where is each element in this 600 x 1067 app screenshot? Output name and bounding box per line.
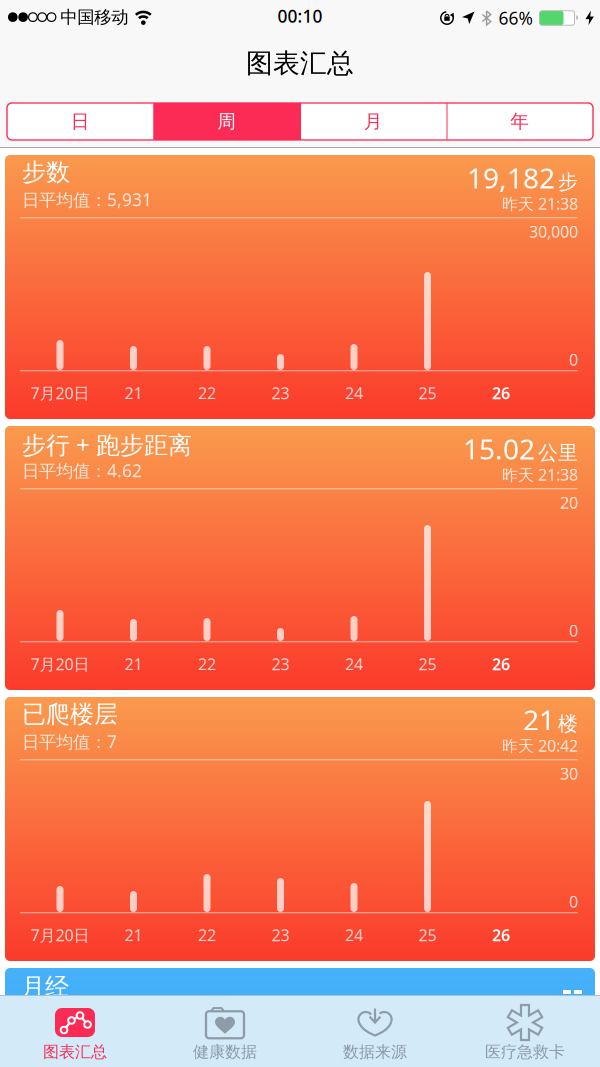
staticText: 26 (492, 653, 510, 675)
staticText: 日平均值：4.62 (22, 459, 142, 482)
staticText: 图表汇总 (246, 47, 354, 80)
staticText: 7月20日 (30, 382, 89, 404)
staticText: 23 (271, 382, 289, 404)
staticText: 日平均值：5,931 (22, 188, 152, 211)
staticText: 0 (569, 620, 578, 641)
staticText: 22 (198, 382, 216, 404)
button[interactable]: 数据来源 (300, 996, 450, 1067)
staticText: 21 (124, 924, 142, 946)
staticText: 24 (345, 924, 363, 946)
button[interactable]: 月经 (5, 968, 595, 1067)
staticText: 21 (523, 701, 555, 738)
button[interactable]: 年 (446, 103, 593, 140)
staticText: 中国移动 (60, 6, 128, 28)
staticText: 0 (569, 349, 578, 370)
staticText: 26 (492, 924, 510, 946)
staticText: 步数 (22, 157, 70, 187)
button[interactable]: 医疗急救卡 (450, 996, 600, 1067)
staticText: 昨天 21:38 (502, 193, 578, 214)
button[interactable]: 图表汇总 (0, 996, 150, 1067)
staticText: 19,182 (467, 159, 555, 196)
button[interactable]: 日 (7, 103, 153, 140)
staticText: 步行 + 跑步距离 (22, 428, 192, 460)
staticText: 已爬楼层 (22, 699, 118, 729)
staticText: 7月20日 (30, 924, 89, 946)
staticText: 7月20日 (30, 653, 89, 675)
staticText: 21 (124, 653, 142, 675)
button[interactable]: 步数 (5, 155, 595, 419)
staticText: 22 (198, 924, 216, 946)
staticText: 26 (492, 382, 510, 404)
staticText: 公里 (538, 441, 578, 465)
staticText: 25 (418, 924, 436, 946)
staticText: 24 (345, 653, 363, 675)
staticText: 月经 (21, 972, 69, 1001)
staticText: 66% (498, 6, 532, 29)
staticText: 21 (124, 382, 142, 404)
staticText: 医疗急救卡 (485, 1042, 565, 1062)
staticText: 图表汇总 (43, 1042, 107, 1062)
staticText: 楼 (558, 712, 578, 736)
staticText: 30 (560, 763, 578, 784)
staticText: 昨天 21:38 (502, 464, 578, 485)
staticText: 日平均值：7 (22, 730, 117, 753)
staticText: 数据来源 (343, 1042, 407, 1062)
button[interactable]: 健康数据 (150, 996, 300, 1067)
staticText: 步 (558, 170, 578, 194)
staticText: 月 (364, 110, 383, 133)
staticText: 15.02 (463, 430, 535, 467)
staticText: 健康数据 (193, 1042, 257, 1062)
button[interactable]: 已爬楼层 (5, 697, 595, 961)
staticText: 22 (198, 653, 216, 675)
staticText: 23 (271, 924, 289, 946)
staticText: 昨天 20:42 (502, 735, 578, 756)
staticText: 30,000 (529, 221, 578, 242)
button[interactable]: 步行 + 跑步距离 (5, 426, 595, 690)
staticText: 20 (560, 492, 578, 513)
staticText: 23 (271, 653, 289, 675)
staticText: 日 (71, 110, 90, 133)
staticText: 年 (510, 110, 529, 133)
button[interactable]: 周 (153, 103, 300, 140)
button[interactable]: 月 (300, 103, 446, 140)
staticText: 24 (345, 382, 363, 404)
staticText: 25 (418, 653, 436, 675)
staticText: 25 (418, 382, 436, 404)
staticText: 00:10 (277, 4, 322, 27)
staticText: 周 (217, 110, 236, 133)
staticText: 0 (569, 891, 578, 912)
